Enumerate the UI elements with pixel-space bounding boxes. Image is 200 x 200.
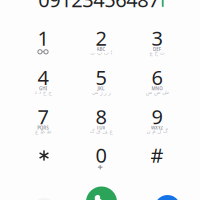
button[interactable]: 9 — [129, 97, 185, 137]
staticText — [40, 142, 45, 168]
staticText — [99, 158, 102, 174]
button[interactable] — [15, 135, 71, 175]
staticText: WXYZ — [140, 120, 173, 136]
staticText: 2 — [95, 25, 106, 51]
staticText: گ ل م ن — [131, 124, 183, 139]
button[interactable]: 5 — [73, 57, 129, 97]
staticText — [155, 161, 158, 178]
button[interactable]: 4 — [15, 57, 71, 97]
staticText — [41, 44, 44, 61]
staticText: ABC — [89, 41, 113, 57]
button[interactable]: Call — [86, 186, 117, 200]
staticText: # — [150, 142, 163, 168]
staticText: ش ص ض — [129, 84, 185, 99]
staticText: ر ز ژ س — [78, 84, 124, 99]
staticText: DEF — [146, 41, 168, 57]
staticText: غ ف ق ک — [73, 124, 129, 139]
staticText: PQRS — [27, 120, 58, 136]
staticText: 5 — [95, 64, 106, 91]
button[interactable]: 8 — [73, 97, 129, 137]
button[interactable]: 2 — [73, 18, 129, 58]
staticText: 4 — [37, 64, 48, 91]
staticText: ث ج چ — [137, 45, 176, 60]
staticText: 3 — [151, 25, 162, 51]
staticText: 8 — [95, 103, 106, 130]
button[interactable]: # — [129, 135, 185, 175]
staticText: JKL — [91, 80, 110, 96]
staticText: 6 — [151, 64, 162, 91]
staticText: ح خ د ذ — [22, 84, 64, 99]
button[interactable]: 1 — [15, 18, 71, 58]
staticText: MNO — [142, 80, 172, 96]
staticText: 09123456487 — [38, 0, 159, 13]
staticText: 7 — [37, 103, 48, 130]
button[interactable]: 3 — [129, 18, 185, 58]
staticText: 9 — [151, 103, 162, 130]
staticText — [41, 158, 44, 174]
staticText: ط ظ ع — [23, 124, 63, 139]
staticText — [155, 158, 158, 174]
staticText — [99, 161, 102, 178]
staticText: 0 — [95, 142, 106, 168]
button[interactable]: 0 — [73, 135, 129, 175]
button[interactable]: 7 — [15, 97, 71, 137]
button[interactable]: Contacts — [31, 198, 57, 200]
button[interactable]: Video call — [154, 195, 180, 200]
staticText: ا ب پ ت — [73, 45, 128, 60]
staticText: GHI — [32, 80, 54, 96]
staticText: TUV — [89, 120, 113, 136]
staticText — [41, 41, 44, 57]
button[interactable]: 6 — [129, 57, 185, 97]
staticText: 1 — [37, 25, 48, 51]
